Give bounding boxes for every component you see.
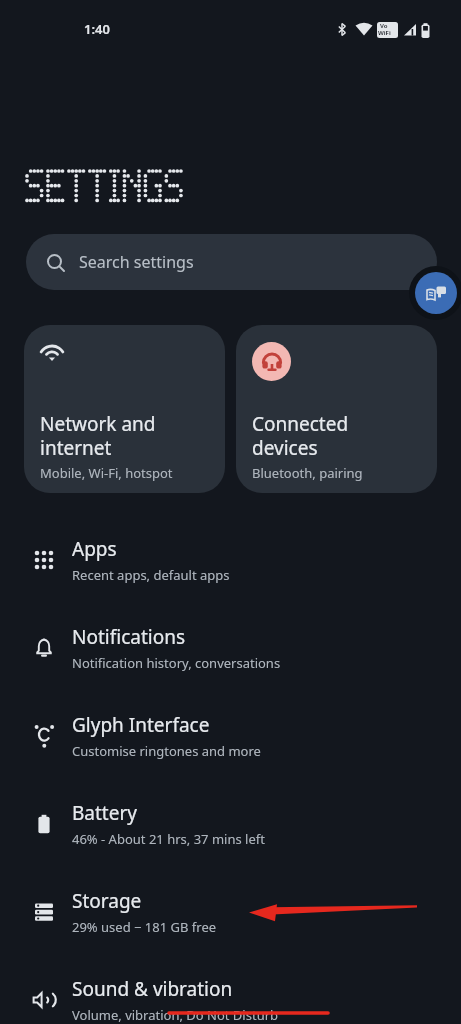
- staticText: Notifications: [72, 624, 186, 650]
- staticText: Vo: [380, 22, 388, 30]
- button[interactable]: Connected devices: [236, 325, 437, 493]
- staticText: Glyph Interface: [72, 712, 210, 738]
- staticText: Sound & vibration: [72, 976, 233, 1002]
- staticText: Battery: [72, 800, 137, 826]
- staticText: Connected devices: [252, 411, 349, 460]
- staticText: Volume, vibration, Do Not Disturb: [72, 1006, 279, 1024]
- button[interactable]: Network and internet: [24, 325, 225, 493]
- staticText: 1:40: [84, 20, 110, 38]
- button[interactable]: Apps: [0, 516, 461, 604]
- button[interactable]: Notifications: [0, 604, 461, 692]
- staticText: Customise ringtones and more: [72, 742, 261, 760]
- staticText: Bluetooth, pairing: [252, 464, 363, 482]
- staticText: Recent apps, default apps: [72, 566, 230, 584]
- staticText: 29% used − 181 GB free: [72, 918, 217, 936]
- staticText: Storage: [72, 888, 142, 914]
- button[interactable]: Battery: [0, 780, 461, 868]
- staticText: 46% - About 21 hrs, 37 mins left: [72, 830, 265, 848]
- staticText: Apps: [72, 536, 117, 562]
- button[interactable]: Search settings: [26, 234, 437, 290]
- staticText: Search settings: [79, 251, 194, 273]
- button[interactable]: [415, 272, 457, 314]
- button[interactable]: Sound & vibration: [0, 956, 461, 1024]
- button[interactable]: Glyph Interface: [0, 692, 461, 780]
- staticText: Mobile, Wi-Fi, hotspot: [40, 464, 173, 482]
- staticText: Notification history, conversations: [72, 654, 281, 672]
- button[interactable]: Storage: [0, 868, 461, 956]
- staticText: WiFi: [378, 29, 391, 37]
- staticText: Network and internet: [40, 411, 156, 460]
